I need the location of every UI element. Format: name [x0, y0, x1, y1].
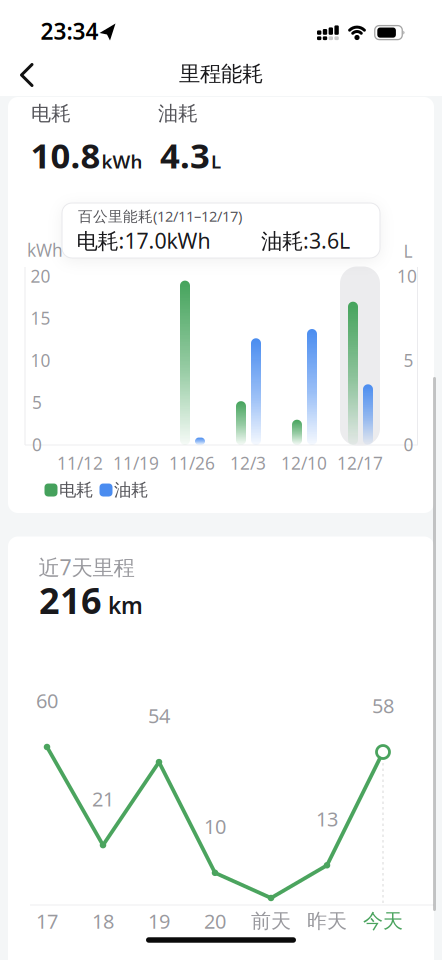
staticText: 里程能耗 [179, 61, 263, 87]
staticText: kWh [27, 238, 63, 261]
staticText: 昨天 [307, 909, 347, 933]
staticText: 电耗 [31, 101, 71, 126]
staticText: 54 [148, 702, 170, 729]
staticText: 0 [403, 433, 413, 456]
staticText: 58 [372, 692, 394, 719]
staticText: L [211, 149, 221, 174]
staticText: 19 [148, 908, 170, 934]
staticText: km [108, 590, 143, 620]
staticText: 60 [36, 687, 58, 714]
staticText: 11/26 [169, 451, 215, 474]
staticText: 油耗 [158, 101, 198, 126]
staticText: 油耗 [114, 479, 148, 501]
staticText: 10.8 [30, 132, 100, 178]
staticText: 4.3 [160, 132, 210, 178]
staticText: 17 [36, 908, 58, 934]
staticText: 0 [32, 433, 42, 456]
staticText: kWh [101, 149, 142, 174]
staticText: 油耗:3.6L [261, 226, 350, 255]
staticText: 前天 [251, 909, 291, 933]
staticText: 5 [32, 391, 42, 414]
staticText: 216 [39, 576, 102, 624]
staticText: 21 [92, 785, 114, 812]
staticText: 10 [30, 349, 50, 372]
staticText: 15 [30, 307, 50, 330]
staticText: 20 [30, 264, 50, 287]
staticText: 11/12 [57, 451, 103, 474]
staticText: 今天 [363, 909, 403, 933]
button[interactable]: Back [4, 55, 48, 95]
staticText: 10 [397, 264, 417, 287]
staticText: 23:34 [40, 16, 98, 46]
staticText: 18 [92, 908, 114, 934]
staticText: 电耗 [59, 479, 93, 501]
staticText: 11/19 [113, 451, 159, 474]
staticText: 12/10 [281, 451, 327, 474]
staticText: L [403, 239, 412, 262]
staticText: 12/3 [230, 451, 266, 474]
staticText: 百公里能耗(12/11–12/17) [78, 206, 242, 226]
staticText: 12/17 [337, 451, 383, 474]
staticText: 近7天里程 [38, 553, 134, 581]
staticText: 电耗:17.0kWh [76, 226, 210, 255]
staticText: 20 [204, 908, 226, 934]
staticText: 13 [316, 805, 338, 832]
staticText: 5 [403, 349, 413, 372]
staticText: 10 [204, 813, 226, 840]
